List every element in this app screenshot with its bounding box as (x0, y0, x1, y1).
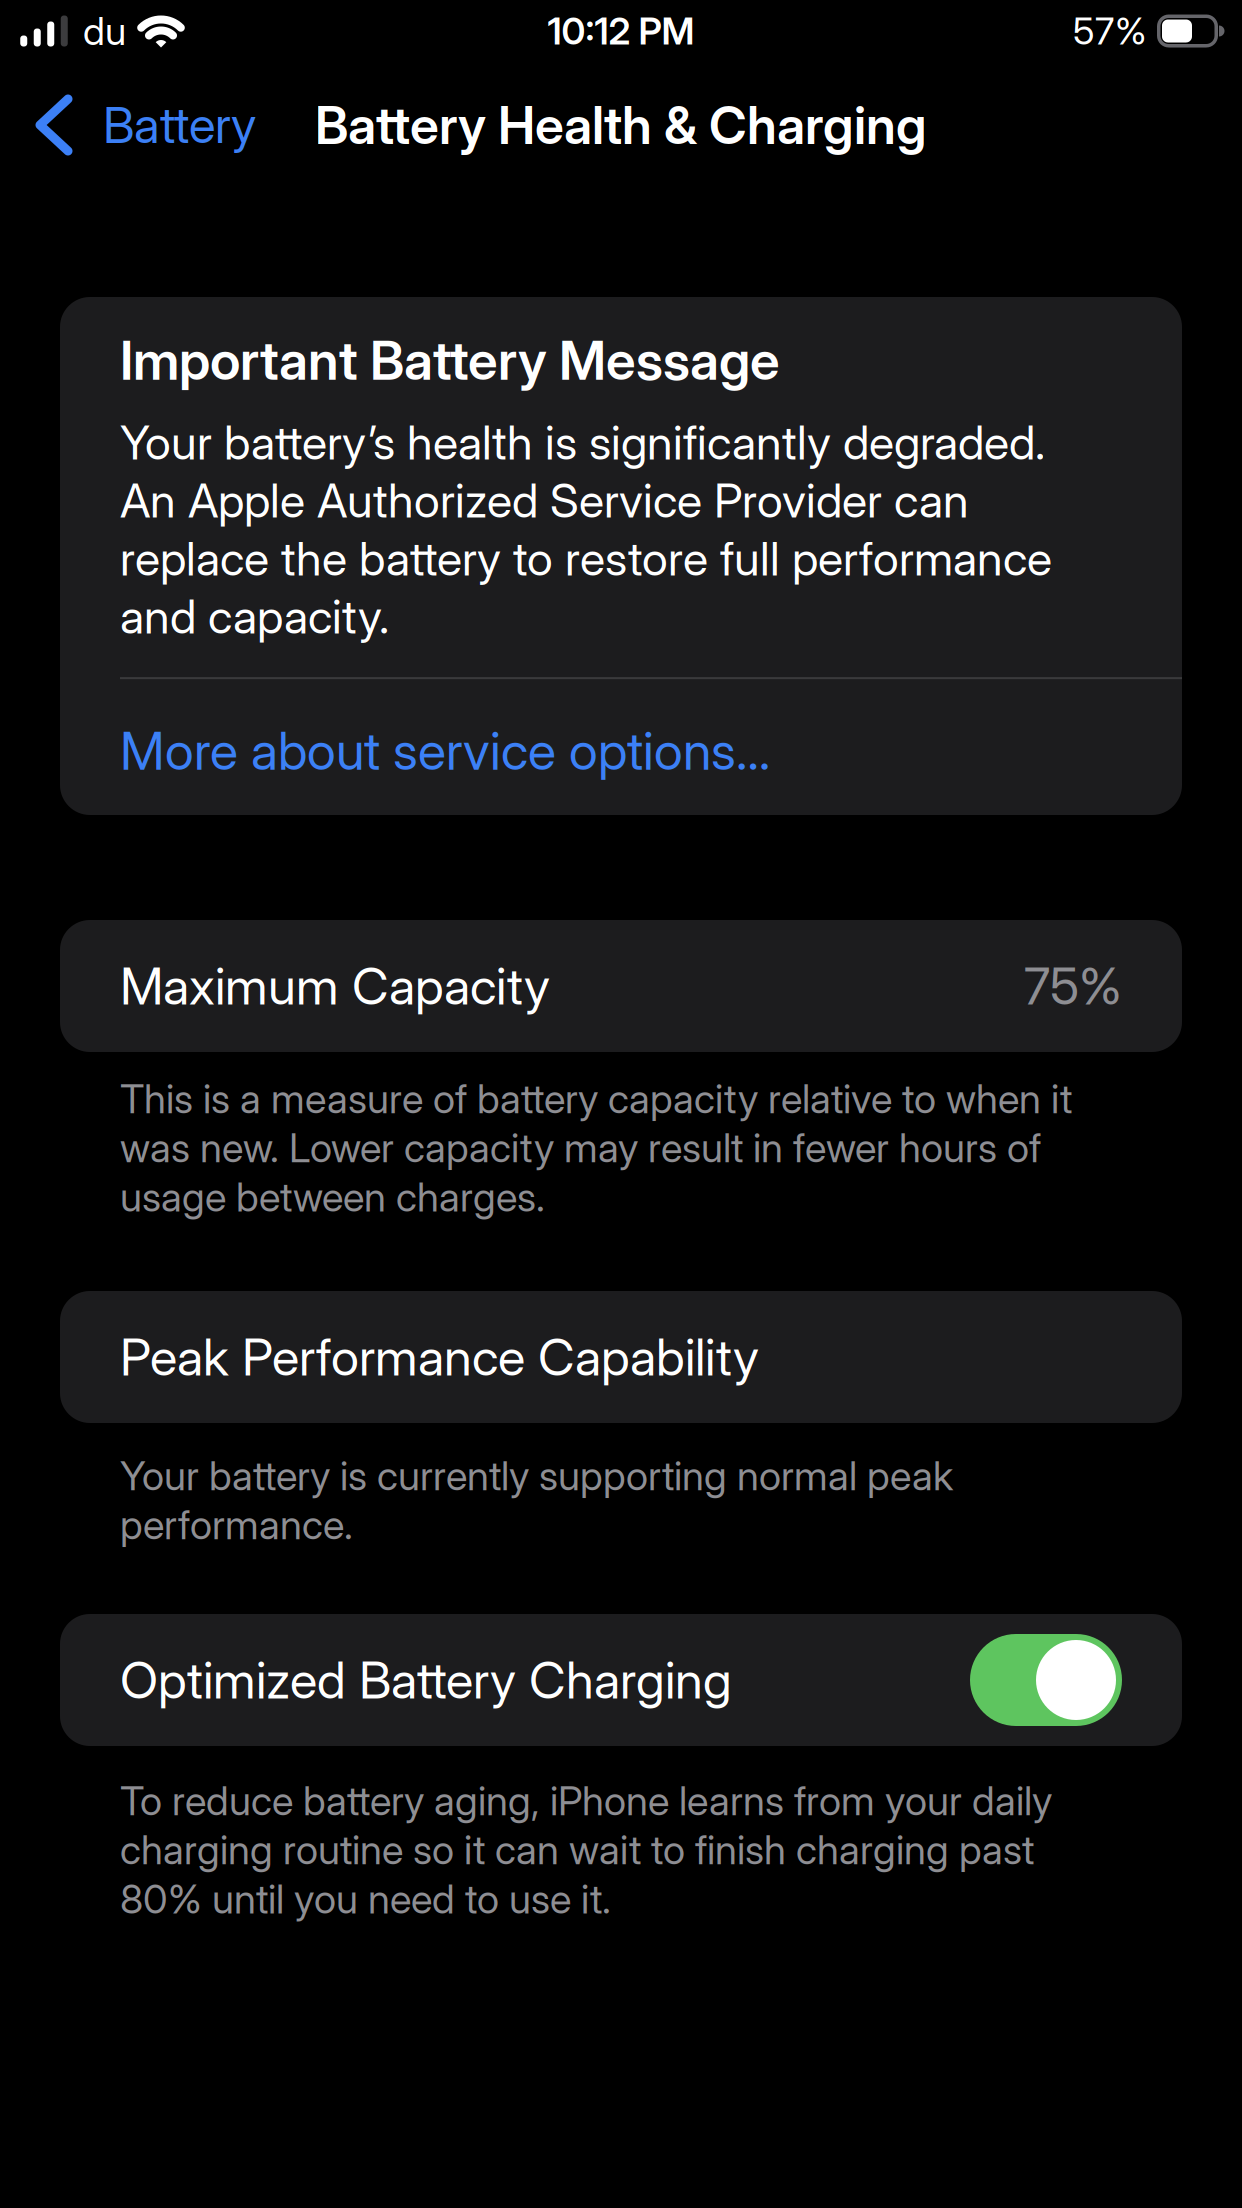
staticText: Your battery’s health is significantly d… (120, 415, 1052, 644)
staticText: Important Battery Message (120, 329, 780, 392)
staticText: Maximum Capacity (120, 956, 550, 1016)
staticText: To reduce battery aging, iPhone learns f… (120, 1777, 1052, 1923)
staticText: Battery Health & Charging (315, 94, 927, 156)
staticText: This is a measure of battery capacity re… (120, 1075, 1072, 1221)
staticText: More about service options… (120, 720, 770, 781)
button[interactable]: Optimized Battery Charging (970, 1634, 1122, 1726)
staticText: Optimized Battery Charging (120, 1650, 732, 1710)
staticText: Battery (103, 96, 256, 154)
staticText: Your battery is currently supporting nor… (120, 1452, 953, 1548)
button[interactable]: More about service options (60, 679, 1182, 781)
staticText: 75% (1024, 956, 1122, 1016)
staticText: 57% (1073, 9, 1147, 53)
staticText: du (83, 8, 126, 54)
staticText: Peak Performance Capability (120, 1327, 759, 1387)
button[interactable]: Back (35, 96, 256, 154)
staticText: 10:12 PM (547, 9, 694, 53)
